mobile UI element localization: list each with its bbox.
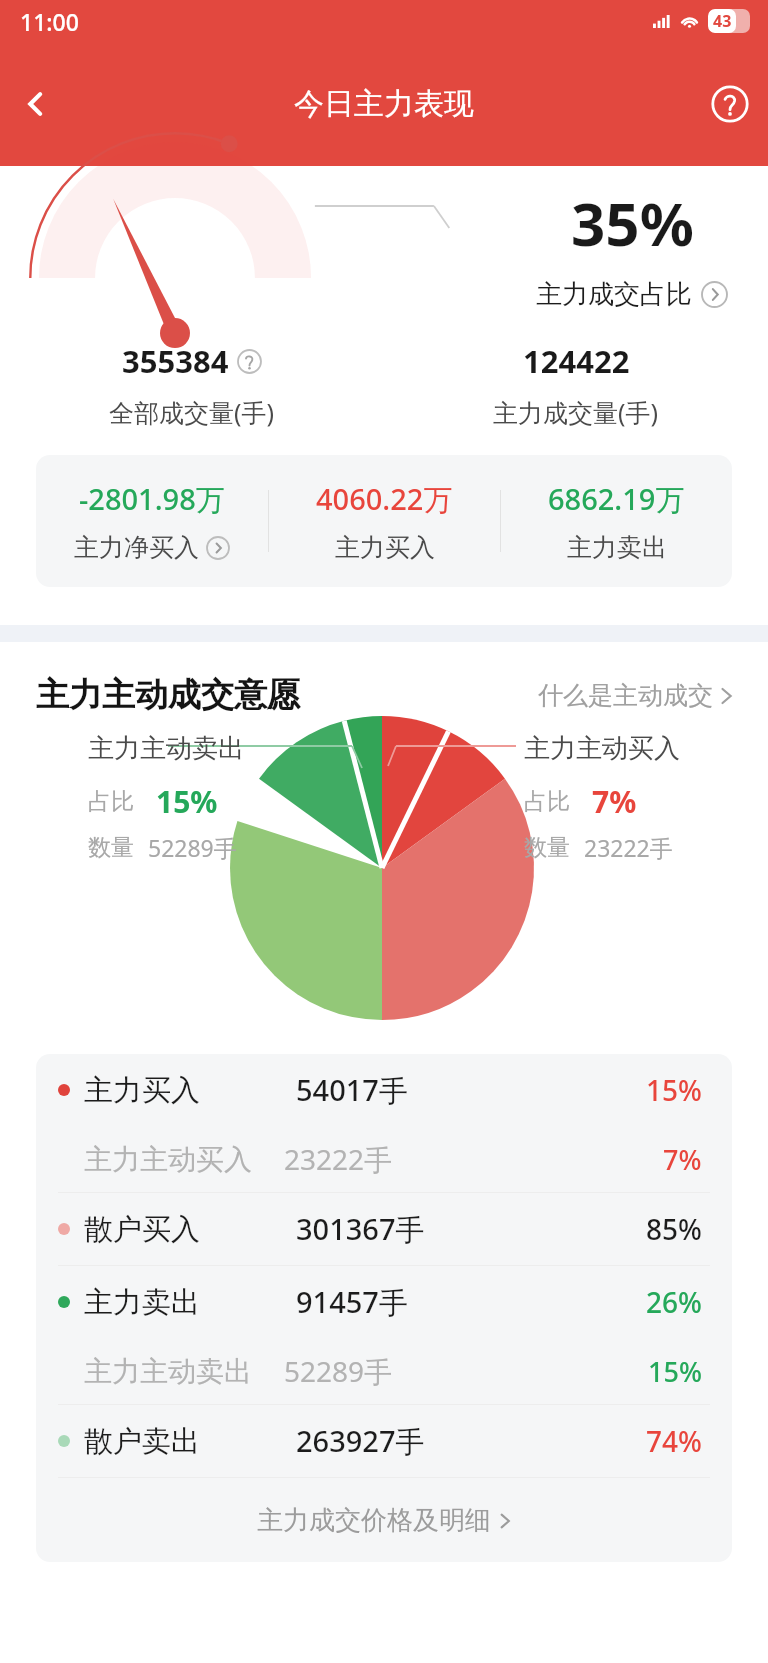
button[interactable]: 散户买入 (36, 1193, 732, 1265)
button[interactable]: 主力成交价格及明细 (36, 1478, 732, 1562)
staticText: 什么是主动成交 (538, 680, 713, 711)
staticText: 主力卖出 (84, 1284, 296, 1321)
staticText: 主力主动卖出 (88, 732, 244, 765)
staticText: 15% (156, 781, 218, 822)
staticText: 散户买入 (84, 1211, 296, 1248)
button[interactable]: 4060.22万 (269, 479, 500, 563)
staticText: 52289手 (148, 832, 237, 863)
staticText: 7% (592, 781, 637, 822)
staticText: 7% (663, 1141, 702, 1178)
staticText: 355384 (122, 340, 229, 382)
staticText: 主力主动卖出 (84, 1354, 284, 1389)
staticText: 23222手 (284, 1140, 663, 1178)
staticText: 主力主动买入 (84, 1142, 284, 1177)
staticText: 54017手 (296, 1070, 646, 1110)
button[interactable]: Help (692, 66, 768, 142)
staticText: 全部成交量(手) (109, 395, 275, 429)
staticText: 91457手 (296, 1282, 646, 1322)
staticText: 4060.22万 (316, 479, 453, 519)
button[interactable]: 主力主动卖出 (36, 1338, 732, 1404)
staticText: 占比 (524, 787, 570, 816)
staticText: 主力买入 (84, 1072, 296, 1109)
staticText: 263927手 (296, 1421, 646, 1461)
staticText: 主力主动成交意愿 (36, 674, 300, 716)
staticText: 散户卖出 (84, 1423, 296, 1460)
button[interactable]: 散户卖出 (36, 1405, 732, 1477)
staticText: 85% (646, 1210, 702, 1248)
button[interactable]: 主力成交占比 (536, 278, 728, 311)
staticText: 主力净买入 (74, 532, 199, 563)
staticText: 301367手 (296, 1209, 646, 1249)
staticText: 数量 (88, 833, 134, 862)
staticText: 主力买入 (335, 532, 435, 563)
staticText: 占比 (88, 787, 134, 816)
button[interactable]: 6862.19万 (501, 479, 732, 563)
staticText: 主力成交占比 (536, 278, 692, 311)
staticText: 43 (713, 10, 732, 32)
staticText: 15% (648, 1353, 702, 1390)
staticText: 23222手 (584, 832, 673, 863)
staticText: 35% (571, 182, 694, 264)
staticText: 124422 (523, 340, 630, 382)
button[interactable]: 主力主动买入 (36, 1126, 732, 1192)
staticText: 主力卖出 (567, 532, 667, 563)
button[interactable]: 什么是主动成交 (538, 680, 734, 711)
button[interactable]: 主力买入 (36, 1054, 732, 1126)
staticText: 74% (646, 1422, 702, 1460)
staticText: 数量 (524, 833, 570, 862)
staticText: 6862.19万 (548, 479, 685, 519)
staticText: 15% (646, 1071, 702, 1109)
button[interactable]: Back (0, 68, 72, 140)
staticText: 主力成交价格及明细 (257, 1504, 491, 1537)
other: Info (237, 349, 262, 374)
staticText: 主力成交量(手) (493, 395, 659, 429)
staticText: -2801.98万 (79, 479, 225, 519)
button[interactable]: -2801.98万 (36, 479, 268, 563)
staticText: 26% (646, 1283, 702, 1321)
staticText: 52289手 (284, 1352, 648, 1390)
staticText: 主力主动买入 (524, 732, 680, 765)
staticText: 今日主力表现 (294, 85, 474, 123)
button[interactable]: 主力卖出 (36, 1266, 732, 1338)
staticText: 11:00 (20, 6, 79, 37)
